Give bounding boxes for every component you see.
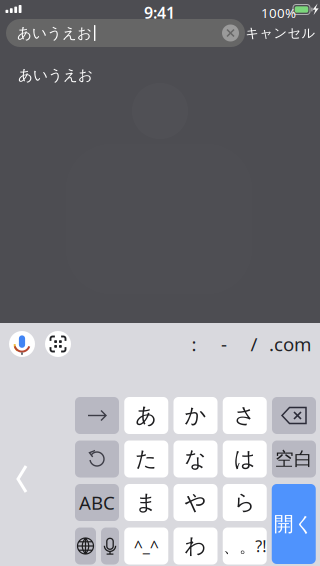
staticText: 9:41 — [144, 2, 175, 23]
staticText: あいうえお — [18, 66, 93, 84]
button[interactable]: は — [223, 440, 267, 477]
staticText: わ — [184, 533, 206, 559]
button[interactable]: .com — [269, 327, 311, 361]
staticText: ^_^ — [134, 535, 159, 557]
staticText: 、。?! — [223, 535, 266, 557]
button[interactable]: Delete — [272, 397, 316, 434]
button[interactable]: Switch keyboard — [75, 527, 96, 564]
button[interactable]: Dictation — [101, 527, 119, 564]
button[interactable]: か — [173, 397, 217, 434]
button[interactable]: わ — [173, 527, 217, 564]
button[interactable]: : — [179, 327, 209, 361]
button[interactable]: - — [209, 327, 239, 361]
staticText: / — [250, 332, 257, 356]
staticText: 開く — [274, 512, 314, 536]
button[interactable]: キャンセル — [247, 19, 314, 47]
button[interactable]: ABC — [75, 484, 119, 521]
button[interactable]: Space — [272, 440, 316, 477]
staticText: あいうえお — [17, 24, 92, 42]
button[interactable]: や — [173, 484, 217, 521]
button[interactable]: ま — [124, 484, 168, 521]
button[interactable]: Clear text — [222, 24, 239, 41]
staticText: な — [184, 446, 206, 472]
staticText: - — [221, 332, 227, 356]
button[interactable]: ら — [223, 484, 267, 521]
button[interactable]: / — [239, 327, 269, 361]
button[interactable]: Voice search — [9, 331, 35, 357]
staticText: は — [234, 446, 256, 472]
button[interactable]: Next candidate — [75, 397, 119, 434]
button[interactable]: た — [124, 440, 168, 477]
button[interactable]: あいうえお — [0, 58, 320, 92]
button[interactable]: 開く — [272, 484, 316, 564]
staticText: .com — [269, 332, 311, 356]
staticText: : — [191, 332, 196, 356]
button[interactable]: Undo — [75, 440, 119, 477]
staticText: 空白 — [275, 447, 313, 470]
staticText: か — [184, 402, 206, 429]
staticText: ABC — [79, 490, 115, 515]
staticText: ら — [234, 489, 256, 516]
button[interactable]: ^_^ — [124, 527, 168, 564]
button[interactable]: さ — [223, 397, 267, 434]
staticText: さ — [234, 402, 256, 429]
button[interactable]: 、。?! — [223, 527, 267, 564]
button[interactable]: な — [173, 440, 217, 477]
staticText: ま — [135, 489, 157, 516]
button[interactable]: あ — [124, 397, 168, 434]
staticText: や — [184, 489, 206, 516]
button[interactable]: Google Lens — [45, 331, 71, 357]
staticText: た — [135, 446, 157, 472]
staticText: あ — [135, 402, 157, 429]
staticText: 100% — [261, 4, 296, 22]
staticText: キャンセル — [245, 25, 315, 41]
